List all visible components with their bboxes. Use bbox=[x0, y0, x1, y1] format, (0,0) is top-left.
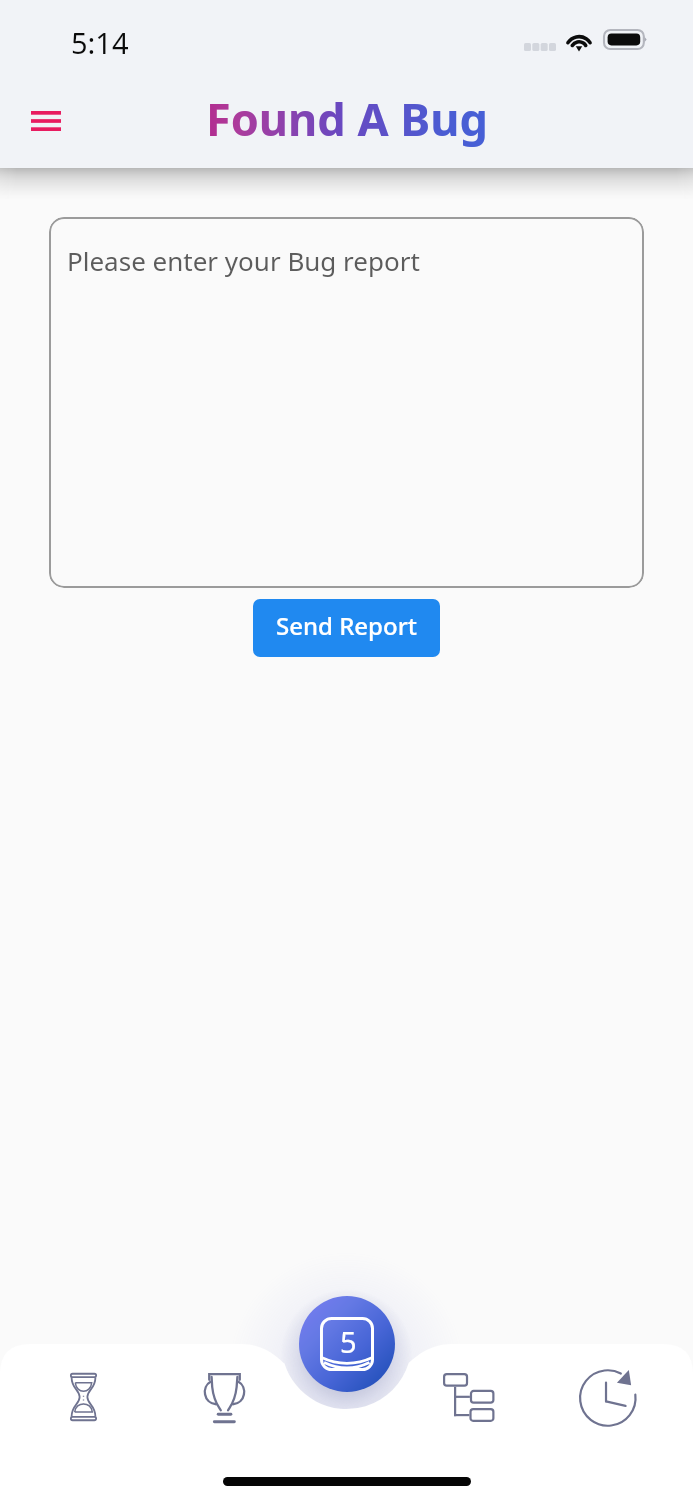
button[interactable]: Leaderboard bbox=[176, 1350, 272, 1446]
button[interactable]: Timer bbox=[35, 1349, 131, 1445]
staticText: Found A Bug bbox=[206, 88, 488, 149]
staticText: Please enter your Bug report bbox=[67, 243, 420, 278]
button[interactable]: Please enter your Bug report bbox=[49, 217, 644, 588]
button[interactable]: Menu bbox=[22, 97, 70, 145]
staticText: Send Report bbox=[276, 609, 417, 642]
button[interactable]: Hierarchy bbox=[421, 1349, 517, 1445]
staticText: 5 bbox=[340, 1322, 357, 1361]
button[interactable]: Send Report bbox=[253, 599, 440, 657]
button[interactable]: Open lessons bbox=[299, 1296, 395, 1392]
button[interactable]: History bbox=[561, 1350, 657, 1446]
staticText: 5:14 bbox=[71, 23, 129, 62]
